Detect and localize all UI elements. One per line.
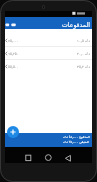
staticText: المدفوعات [62, 21, 90, 28]
staticText: ٦٥٫٢٥٠ [8, 52, 19, 56]
staticText: ٥٥٫٥٠٠ [8, 65, 19, 69]
staticText: د.ك ١٠٫٥ [77, 38, 91, 43]
staticText: ٧٥٫٠٠٠ [8, 39, 19, 43]
staticText: المدفوع ٤٥٫٠٠٠ د.ك [63, 135, 90, 139]
button[interactable]: ٦٥٫٢٥٠ [5, 47, 92, 60]
staticText: د.ك ٣٥٫٢ [77, 64, 91, 69]
button[interactable] [11, 22, 17, 29]
button[interactable] [5, 22, 11, 29]
button[interactable] [61, 151, 75, 165]
button[interactable]: ٧٥٫٠٠٠ [5, 34, 92, 47]
staticText: المتبقي ٢٥٫٠٠٠ د.ك [63, 140, 90, 144]
staticText: د.ك ٢٠٫٠ [77, 51, 91, 56]
button[interactable] [21, 151, 35, 165]
button[interactable] [7, 126, 19, 138]
button[interactable] [41, 151, 55, 165]
button[interactable]: المدفوع ٤٥٫٠٠٠ د.ك [5, 133, 92, 147]
button[interactable]: ٥٥٫٥٠٠ [5, 60, 92, 73]
